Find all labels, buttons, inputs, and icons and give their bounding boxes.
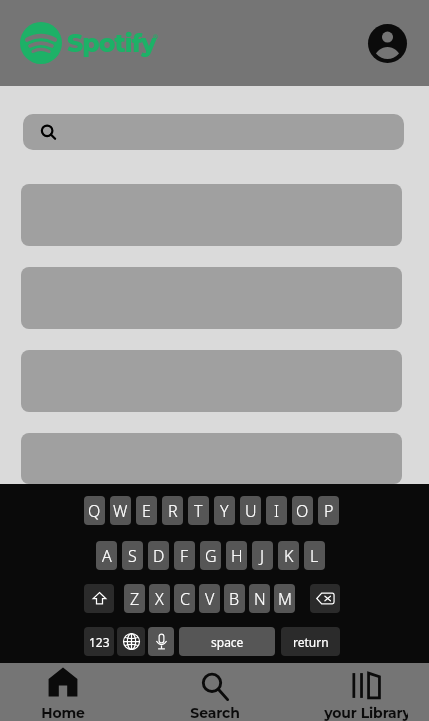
staticText: V [205, 588, 215, 610]
staticText: F [180, 545, 189, 567]
staticText: A [102, 545, 112, 567]
button[interactable]: Shift [84, 584, 114, 613]
staticText: X [155, 588, 164, 610]
button[interactable]: return [281, 627, 340, 656]
staticText: S [128, 545, 137, 567]
button[interactable]: F [174, 541, 195, 570]
staticText: W [113, 500, 128, 522]
button[interactable]: M [274, 584, 295, 613]
staticText: U [245, 500, 257, 522]
button[interactable]: Q [84, 496, 105, 525]
staticText: J [260, 545, 265, 567]
staticText: P [324, 500, 334, 522]
button[interactable]: V [199, 584, 220, 613]
button[interactable] [23, 114, 404, 150]
button[interactable]: B [224, 584, 245, 613]
button[interactable]: U [240, 496, 261, 525]
button[interactable]: 123 [84, 627, 114, 656]
staticText: Home [41, 704, 85, 721]
button[interactable]: C [174, 584, 195, 613]
button[interactable]: E [136, 496, 157, 525]
staticText: D [153, 545, 165, 567]
button[interactable]: your Library [324, 663, 408, 721]
button[interactable]: K [278, 541, 299, 570]
button[interactable]: D [148, 541, 169, 570]
button[interactable]: I [266, 496, 287, 525]
staticText: G [205, 545, 217, 567]
staticText: Q [88, 500, 101, 522]
staticText: T [194, 500, 203, 522]
button[interactable]: O [292, 496, 313, 525]
button[interactable]: A [96, 541, 117, 570]
button[interactable]: Search [173, 663, 257, 721]
staticText: space [211, 634, 244, 650]
button[interactable]: Spotify [20, 22, 161, 64]
button[interactable]: S [122, 541, 143, 570]
button[interactable]: R [162, 496, 183, 525]
staticText: Spotify [67, 28, 156, 58]
staticText: C [180, 588, 190, 610]
staticText: H [231, 545, 243, 567]
staticText: N [254, 588, 266, 610]
button[interactable]: P [318, 496, 339, 525]
staticText: K [284, 545, 294, 567]
button[interactable]: W [110, 496, 131, 525]
staticText: return [293, 634, 329, 650]
button[interactable]: Voice input [148, 627, 174, 656]
staticText: Z [130, 588, 140, 610]
staticText: L [310, 545, 319, 567]
button[interactable]: Backspace [310, 584, 340, 613]
button[interactable]: J [252, 541, 273, 570]
button[interactable]: Keyboard language [117, 627, 145, 656]
button[interactable]: G [200, 541, 221, 570]
button[interactable]: Home [21, 663, 105, 721]
staticText: I [274, 500, 279, 522]
button[interactable]: space [179, 627, 275, 656]
staticText: ® [153, 33, 158, 41]
button[interactable]: Account [367, 23, 407, 63]
staticText: 123 [89, 634, 110, 650]
button[interactable]: H [226, 541, 247, 570]
staticText: E [142, 500, 151, 522]
staticText: Y [220, 500, 229, 522]
button[interactable]: L [304, 541, 325, 570]
staticText: M [278, 588, 292, 610]
staticText: R [168, 500, 178, 522]
button[interactable]: Z [124, 584, 145, 613]
staticText: Search [190, 704, 240, 721]
button[interactable]: Y [214, 496, 235, 525]
staticText: O [296, 500, 309, 522]
button[interactable]: N [249, 584, 270, 613]
button[interactable]: X [149, 584, 170, 613]
staticText: B [229, 588, 240, 610]
staticText: your Library [324, 704, 408, 721]
button[interactable]: T [188, 496, 209, 525]
